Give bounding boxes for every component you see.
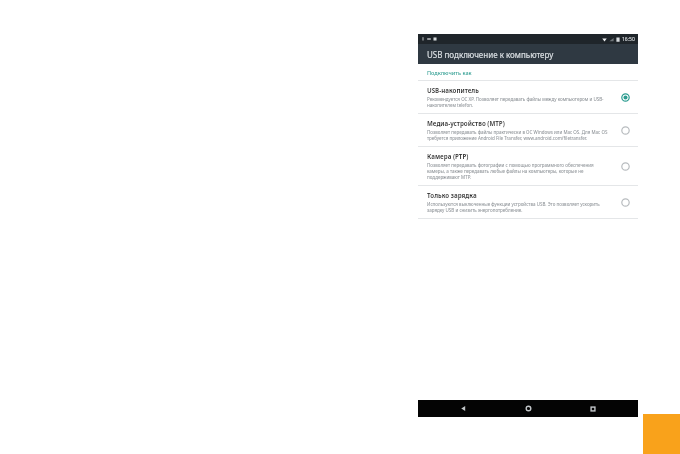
button[interactable]: USB подключение к компьютеру bbox=[418, 44, 638, 64]
other: Selected option bbox=[617, 89, 633, 105]
other: Option bbox=[617, 122, 633, 138]
button[interactable]: Медиа-устройство (MTP) bbox=[418, 114, 638, 146]
button[interactable]: Только зарядка bbox=[418, 186, 638, 218]
other: Option bbox=[617, 194, 633, 210]
staticText: USB-накопитель bbox=[427, 86, 479, 94]
staticText: Рекомендуется ОС ХР. Позволяет передават… bbox=[427, 96, 611, 108]
staticText: Медиа-устройство (MTP) bbox=[427, 119, 505, 127]
staticText: Камера (PTP) bbox=[427, 152, 469, 160]
staticText: Только зарядка bbox=[427, 191, 477, 199]
staticText: 16:50 bbox=[622, 36, 635, 43]
staticText: USB подключение к компьютеру bbox=[427, 49, 554, 60]
staticText: Позволяет передавать файлы практически в… bbox=[427, 129, 611, 141]
button[interactable]: Home bbox=[508, 400, 548, 417]
staticText: Подключить как bbox=[427, 69, 472, 76]
button[interactable]: Recent apps bbox=[573, 400, 613, 417]
other: Option bbox=[617, 158, 633, 174]
button[interactable]: USB-накопитель bbox=[418, 81, 638, 113]
button[interactable]: Камера (PTP) bbox=[418, 147, 638, 185]
button[interactable]: Back bbox=[443, 400, 483, 417]
staticText: Позволяет передавать фотографии с помощь… bbox=[427, 162, 611, 180]
staticText: Используются выключенные функции устройс… bbox=[427, 201, 611, 213]
